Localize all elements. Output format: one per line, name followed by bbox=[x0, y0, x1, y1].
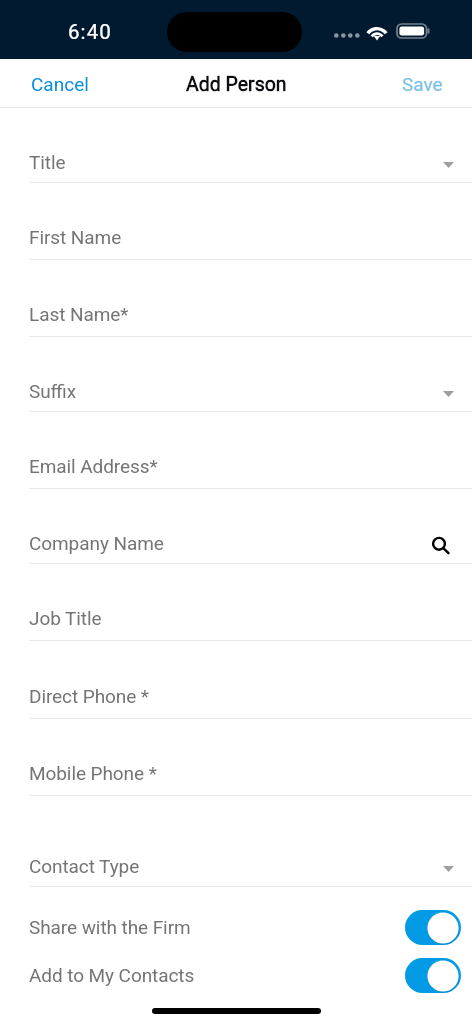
button[interactable]: First Name bbox=[0, 183, 472, 260]
other: Search company bbox=[432, 537, 450, 555]
button[interactable]: Contact Type bbox=[0, 796, 472, 887]
staticText: Direct Phone * bbox=[29, 685, 149, 707]
staticText: Share with the Firm bbox=[29, 916, 191, 938]
staticText: First Name bbox=[29, 226, 122, 248]
other: Open dropdown bbox=[443, 391, 454, 397]
button[interactable]: Save bbox=[378, 63, 472, 105]
button[interactable]: Job Title bbox=[0, 564, 472, 641]
staticText: Suffix bbox=[29, 380, 77, 402]
other: Open dropdown bbox=[443, 162, 454, 168]
staticText: Add to My Contacts bbox=[29, 964, 195, 986]
other: Open dropdown bbox=[443, 866, 454, 872]
staticText: Cancel bbox=[31, 73, 89, 95]
button[interactable]: Add to My Contacts bbox=[0, 951, 472, 999]
button[interactable]: Direct Phone * bbox=[0, 641, 472, 719]
button[interactable]: Last Name* bbox=[0, 260, 472, 337]
button[interactable]: Email Address* bbox=[0, 412, 472, 489]
staticText: Company Name bbox=[29, 532, 164, 554]
button[interactable]: Mobile Phone * bbox=[0, 719, 472, 796]
button[interactable]: Suffix bbox=[0, 337, 472, 412]
staticText: 6:40 bbox=[68, 20, 112, 44]
button[interactable]: Title bbox=[0, 108, 472, 183]
staticText: Title bbox=[29, 151, 66, 173]
staticText: Save bbox=[402, 73, 443, 95]
button[interactable]: Share with the Firm bbox=[0, 903, 472, 951]
staticText: Email Address* bbox=[29, 455, 158, 477]
staticText: Add Person bbox=[186, 73, 287, 96]
staticText: Job Title bbox=[29, 607, 102, 629]
staticText: Contact Type bbox=[29, 855, 140, 877]
button[interactable]: Company Name bbox=[0, 489, 472, 564]
staticText: Last Name* bbox=[29, 303, 129, 325]
staticText: Mobile Phone * bbox=[29, 762, 157, 784]
button[interactable]: Cancel bbox=[0, 63, 113, 105]
